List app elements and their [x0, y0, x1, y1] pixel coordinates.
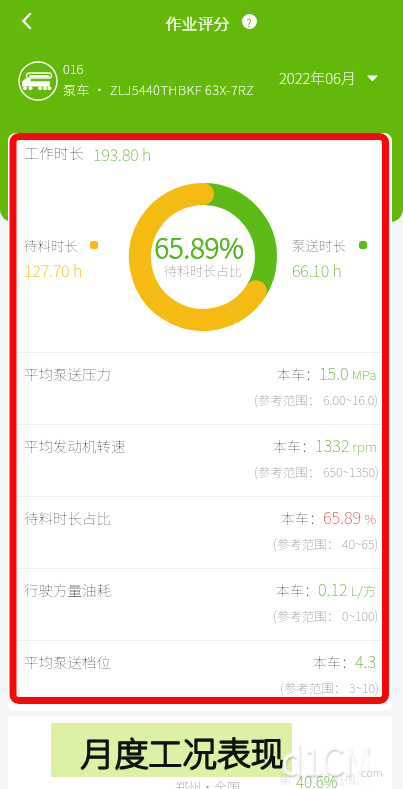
staticText: (参考范围： 40~65): [273, 534, 379, 552]
staticText: 65.89%: [154, 226, 244, 266]
button[interactable]: [10, 4, 44, 38]
staticText: d1CM: [281, 733, 372, 777]
staticText: 平均发动机转速: [24, 435, 126, 456]
staticText: d1CM: [283, 735, 374, 779]
staticText: 193.80 h: [93, 142, 152, 165]
staticText: 平均泵送压力: [24, 363, 111, 384]
staticText: (参考范围： 0~100): [273, 606, 379, 624]
staticText: 2022年06月: [279, 67, 356, 89]
staticText: d1CM: [282, 734, 373, 778]
staticText: 待料时长: [24, 235, 78, 255]
staticText: 月度工况表现: [80, 728, 284, 777]
staticText: 40.6%: [296, 770, 338, 789]
staticText: 016: [63, 59, 84, 78]
staticText: 月度工况表现: [81, 727, 285, 776]
staticText: 本车：15.0 MPa: [277, 361, 377, 385]
staticText: 127.70 h: [24, 258, 83, 281]
staticText: 作业评分: [165, 11, 230, 34]
staticText: 行驶方量油耗: [24, 579, 111, 600]
staticText: (参考范围： 650~1350): [254, 462, 379, 480]
staticText: 工作时长: [24, 142, 85, 164]
staticText: 本车：1332 rpm: [273, 433, 377, 457]
staticText: 65.89%: [155, 226, 245, 266]
staticText: 待料时长占比: [164, 261, 243, 280]
staticText: d1CM: [283, 734, 374, 778]
staticText: 本车：4.3: [313, 649, 377, 673]
staticText: 65.89%: [154, 227, 244, 267]
staticText: 泵车 · ZLJ5440THBKF 63X-7RZ: [63, 80, 255, 99]
staticText: ?: [247, 15, 252, 29]
staticText: 平均泵送档位: [24, 651, 111, 672]
staticText: com: [361, 764, 383, 780]
staticText: 郑州·全国: [175, 777, 241, 789]
staticText: 月度工况表现: [80, 727, 284, 776]
button[interactable]: [51, 723, 292, 777]
staticText: 第一工程机械网: [279, 769, 371, 788]
staticText: d1CM: [281, 732, 372, 776]
staticText: d1CM: [282, 735, 373, 779]
button[interactable]: ?: [242, 14, 257, 29]
staticText: 月度工况表现: [81, 728, 285, 777]
staticText: d1CM: [282, 733, 373, 777]
staticText: 本车：65.89 %: [281, 505, 377, 529]
staticText: 泵送时长: [292, 235, 346, 255]
staticText: (参考范围： 6.00~16.0): [254, 390, 379, 408]
staticText: 本车：0.12 L/方: [276, 577, 377, 601]
staticText: 作业评分: [166, 11, 231, 34]
staticText: 待料时长占比: [24, 507, 111, 528]
staticText: 66.10 h: [292, 258, 342, 281]
button[interactable]: 2022年06月: [272, 62, 392, 94]
staticText: (参考范围： 3~10): [280, 678, 379, 696]
staticText: d1CM: [282, 732, 373, 776]
